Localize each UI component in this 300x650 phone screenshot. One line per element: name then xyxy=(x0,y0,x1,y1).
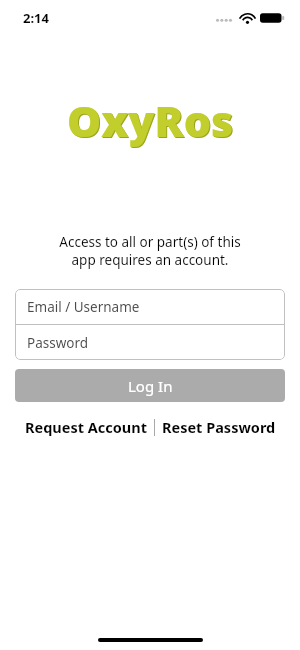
button[interactable]: Log In xyxy=(15,369,285,402)
staticText: Password xyxy=(27,334,89,352)
staticText: OxyRos xyxy=(67,91,234,150)
button[interactable]: Email / Username xyxy=(15,289,285,324)
staticText: Log In xyxy=(128,376,173,396)
staticText: Email / Username xyxy=(27,298,140,316)
button[interactable]: Password xyxy=(15,325,285,360)
staticText: Access to all or part(s) of this app req… xyxy=(22,233,278,269)
staticText: Reset Password xyxy=(162,417,276,437)
staticText: 2:14 xyxy=(23,9,49,27)
button[interactable]: Request Account xyxy=(23,413,149,441)
other: Home indicator xyxy=(98,638,203,642)
button[interactable]: Reset Password xyxy=(160,413,278,441)
staticText: Request Account xyxy=(25,417,147,437)
staticText: OxyRos xyxy=(68,92,235,151)
